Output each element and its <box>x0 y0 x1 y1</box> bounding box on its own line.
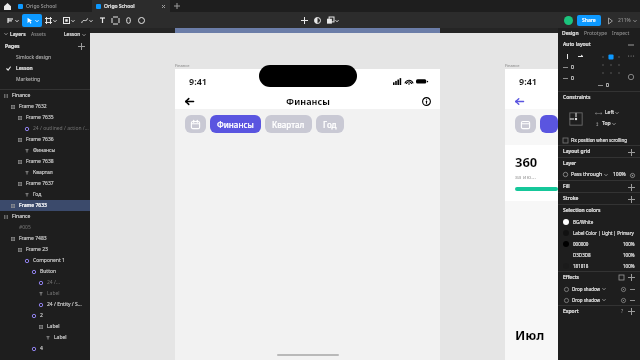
button[interactable]: Add effect <box>628 274 635 281</box>
button[interactable]: Год <box>316 115 344 133</box>
button[interactable]: Design <box>562 30 579 37</box>
button[interactable]: Label <box>0 332 90 343</box>
button[interactable]: Layers <box>327 14 339 27</box>
button[interactable]: Frame 7637 <box>0 178 90 189</box>
button[interactable]: Menu <box>7 14 19 27</box>
button[interactable]: Account <box>564 16 573 25</box>
button[interactable]: Add Stroke <box>627 195 635 203</box>
button[interactable]: Align <box>301 14 308 27</box>
button[interactable]: Финансы <box>0 145 90 156</box>
button[interactable]: Constraints <box>563 106 589 132</box>
button[interactable]: Remove Auto layout <box>627 41 635 49</box>
button[interactable]: Button <box>0 266 90 277</box>
staticText: 0 <box>571 64 574 71</box>
button[interactable]: Lesson <box>4 63 90 74</box>
button[interactable]: Finance <box>0 90 90 101</box>
button[interactable]: Lesson <box>64 31 86 38</box>
button[interactable]: Share <box>577 15 601 26</box>
button[interactable]: Simlock design <box>4 52 90 63</box>
button[interactable]: Frame 7636 <box>0 134 90 145</box>
button[interactable]: Assets <box>31 31 47 38</box>
button[interactable]: Calendar <box>185 115 206 133</box>
button[interactable]: #005 <box>0 222 90 233</box>
button[interactable]: Frame 7638 <box>0 156 90 167</box>
button[interactable]: Present <box>605 16 615 26</box>
button[interactable]: Prototype <box>584 30 608 37</box>
button[interactable]: Add Layout grid <box>627 148 635 156</box>
button[interactable]: Resources <box>112 14 119 27</box>
button[interactable]: Frame 7483 <box>0 233 90 244</box>
button[interactable]: 24 /… <box>0 277 90 288</box>
button[interactable]: Add page <box>77 42 85 50</box>
button[interactable]: Reset <box>627 73 635 81</box>
button[interactable]: Info <box>420 95 432 107</box>
button[interactable]: Label Color | Light | Primary <box>563 227 635 238</box>
button[interactable]: Origo School <box>92 0 170 12</box>
button[interactable]: Horizontal layout <box>576 52 584 60</box>
button[interactable]: Квартал <box>0 167 90 178</box>
button[interactable]: 24 / Entity / S… <box>0 299 90 310</box>
button[interactable]: Marketing <box>4 74 90 85</box>
button[interactable]: 4 <box>0 343 90 354</box>
button[interactable]: Text <box>99 14 106 27</box>
button[interactable]: Add Fill <box>627 183 635 191</box>
button[interactable]: 0 <box>598 81 624 89</box>
button[interactable]: Comment <box>138 14 145 27</box>
button[interactable]: Label <box>0 321 90 332</box>
button[interactable]: BG/White <box>563 216 635 227</box>
button[interactable]: Toggle visibility <box>629 172 635 178</box>
staticText: Auto layout <box>563 41 591 48</box>
button[interactable]: Hand <box>125 14 132 27</box>
button[interactable]: D3D3D8 <box>563 249 635 260</box>
button[interactable]: Финансы <box>210 115 261 133</box>
button[interactable]: Home <box>0 0 14 12</box>
button[interactable]: Fix position when scrolling <box>563 135 635 145</box>
button[interactable]: Origo School <box>14 0 92 12</box>
staticText: 100% <box>623 241 635 247</box>
staticText: Component 1 <box>33 257 65 264</box>
button[interactable]: Export settings <box>619 308 626 315</box>
button[interactable] <box>540 115 558 133</box>
button[interactable]: Label <box>0 288 90 299</box>
button[interactable]: More options <box>627 52 635 60</box>
button[interactable]: Back <box>513 95 525 107</box>
button[interactable]: Год <box>0 189 90 200</box>
button[interactable]: Frame 23 <box>0 244 90 255</box>
button[interactable]: Inspect <box>612 30 630 37</box>
button[interactable]: Frame 7632 <box>0 101 90 112</box>
button[interactable]: Back <box>183 95 195 107</box>
button[interactable]: Drop shadow <box>563 294 635 305</box>
button[interactable]: Квартал <box>265 115 312 133</box>
button[interactable]: Shape <box>63 14 75 27</box>
button[interactable]: Vertical layout <box>563 52 571 60</box>
staticText: Constraints <box>563 94 591 101</box>
button[interactable]: 0 <box>563 63 574 71</box>
button[interactable]: Finance <box>0 211 90 222</box>
button[interactable]: 24 / outlined / action /… <box>0 123 90 134</box>
staticText: 000000 <box>573 241 589 247</box>
button[interactable]: Alignment grid <box>598 52 624 78</box>
button[interactable]: ↕ <box>595 120 616 127</box>
button[interactable]: Layers <box>10 31 26 38</box>
button[interactable]: 181818 <box>563 260 635 271</box>
button[interactable]: Contrast <box>314 14 321 27</box>
button[interactable]: 2 <box>0 310 90 321</box>
button[interactable]: Frame 7635 <box>0 112 90 123</box>
staticText: Drop shadow <box>572 286 601 292</box>
button[interactable]: 000000 <box>563 238 635 249</box>
button[interactable]: Pass through <box>563 169 635 180</box>
button[interactable]: Move tool <box>22 14 42 27</box>
staticText: #005 <box>19 224 31 231</box>
button[interactable]: Frame <box>45 14 57 27</box>
button[interactable]: Drop shadow <box>563 283 635 294</box>
button[interactable]: Frame 7633 <box>0 200 90 211</box>
button[interactable]: Component 1 <box>0 255 90 266</box>
button[interactable]: Pen <box>81 14 93 27</box>
button[interactable]: 211% <box>618 17 637 24</box>
button[interactable]: Calendar <box>515 115 536 133</box>
button[interactable]: ⟷ <box>595 109 619 116</box>
button[interactable]: Effect styles <box>618 274 625 281</box>
button[interactable]: Add export <box>628 308 635 315</box>
button[interactable]: New tab <box>170 0 184 12</box>
button[interactable]: 0 <box>563 74 574 82</box>
